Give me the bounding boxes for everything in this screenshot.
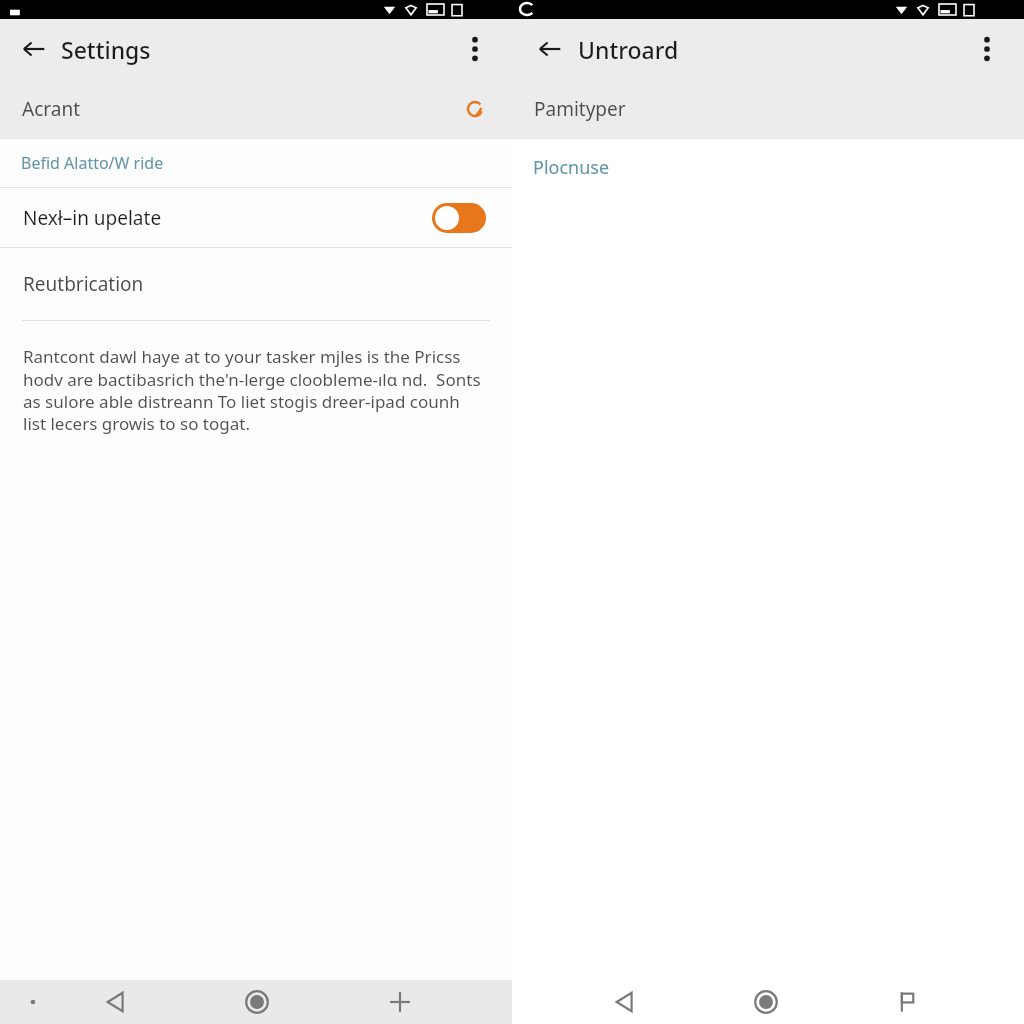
staticText: Nexł–in upelate (23, 205, 162, 231)
staticText: Acrant (22, 96, 80, 122)
staticText: Pamityper (534, 96, 626, 122)
staticText: Untroard (578, 34, 679, 65)
button[interactable]: Befid Alatto/W ride (0, 139, 512, 187)
staticText: Befid Alatto/W ride (21, 152, 164, 174)
button[interactable]: Recents (372, 980, 428, 1024)
button[interactable]: Pamityper (512, 79, 1024, 139)
button[interactable]: Collapse (20, 980, 46, 1024)
button[interactable]: Back (88, 980, 144, 1024)
button[interactable]: Home (229, 980, 285, 1024)
staticText: Reutbrication (23, 271, 144, 297)
button[interactable]: Toggle (432, 201, 488, 235)
button[interactable]: Back (597, 980, 653, 1024)
staticText: Settings (61, 34, 151, 65)
button[interactable]: More options (452, 26, 498, 72)
staticText: Rantcont dawl haye at to your tasker mjl… (23, 345, 484, 435)
button[interactable]: Home (738, 980, 794, 1024)
button[interactable]: More options (964, 26, 1010, 72)
button[interactable]: Plocnuse (512, 143, 1024, 191)
button[interactable]: Back (10, 25, 58, 73)
button[interactable]: Back (526, 25, 574, 73)
button[interactable]: Nexł–in upelate (0, 188, 512, 247)
button[interactable]: Recents (880, 980, 936, 1024)
button[interactable]: Acrant (0, 79, 512, 139)
staticText: Plocnuse (533, 155, 610, 180)
other: Refresh (458, 92, 492, 126)
